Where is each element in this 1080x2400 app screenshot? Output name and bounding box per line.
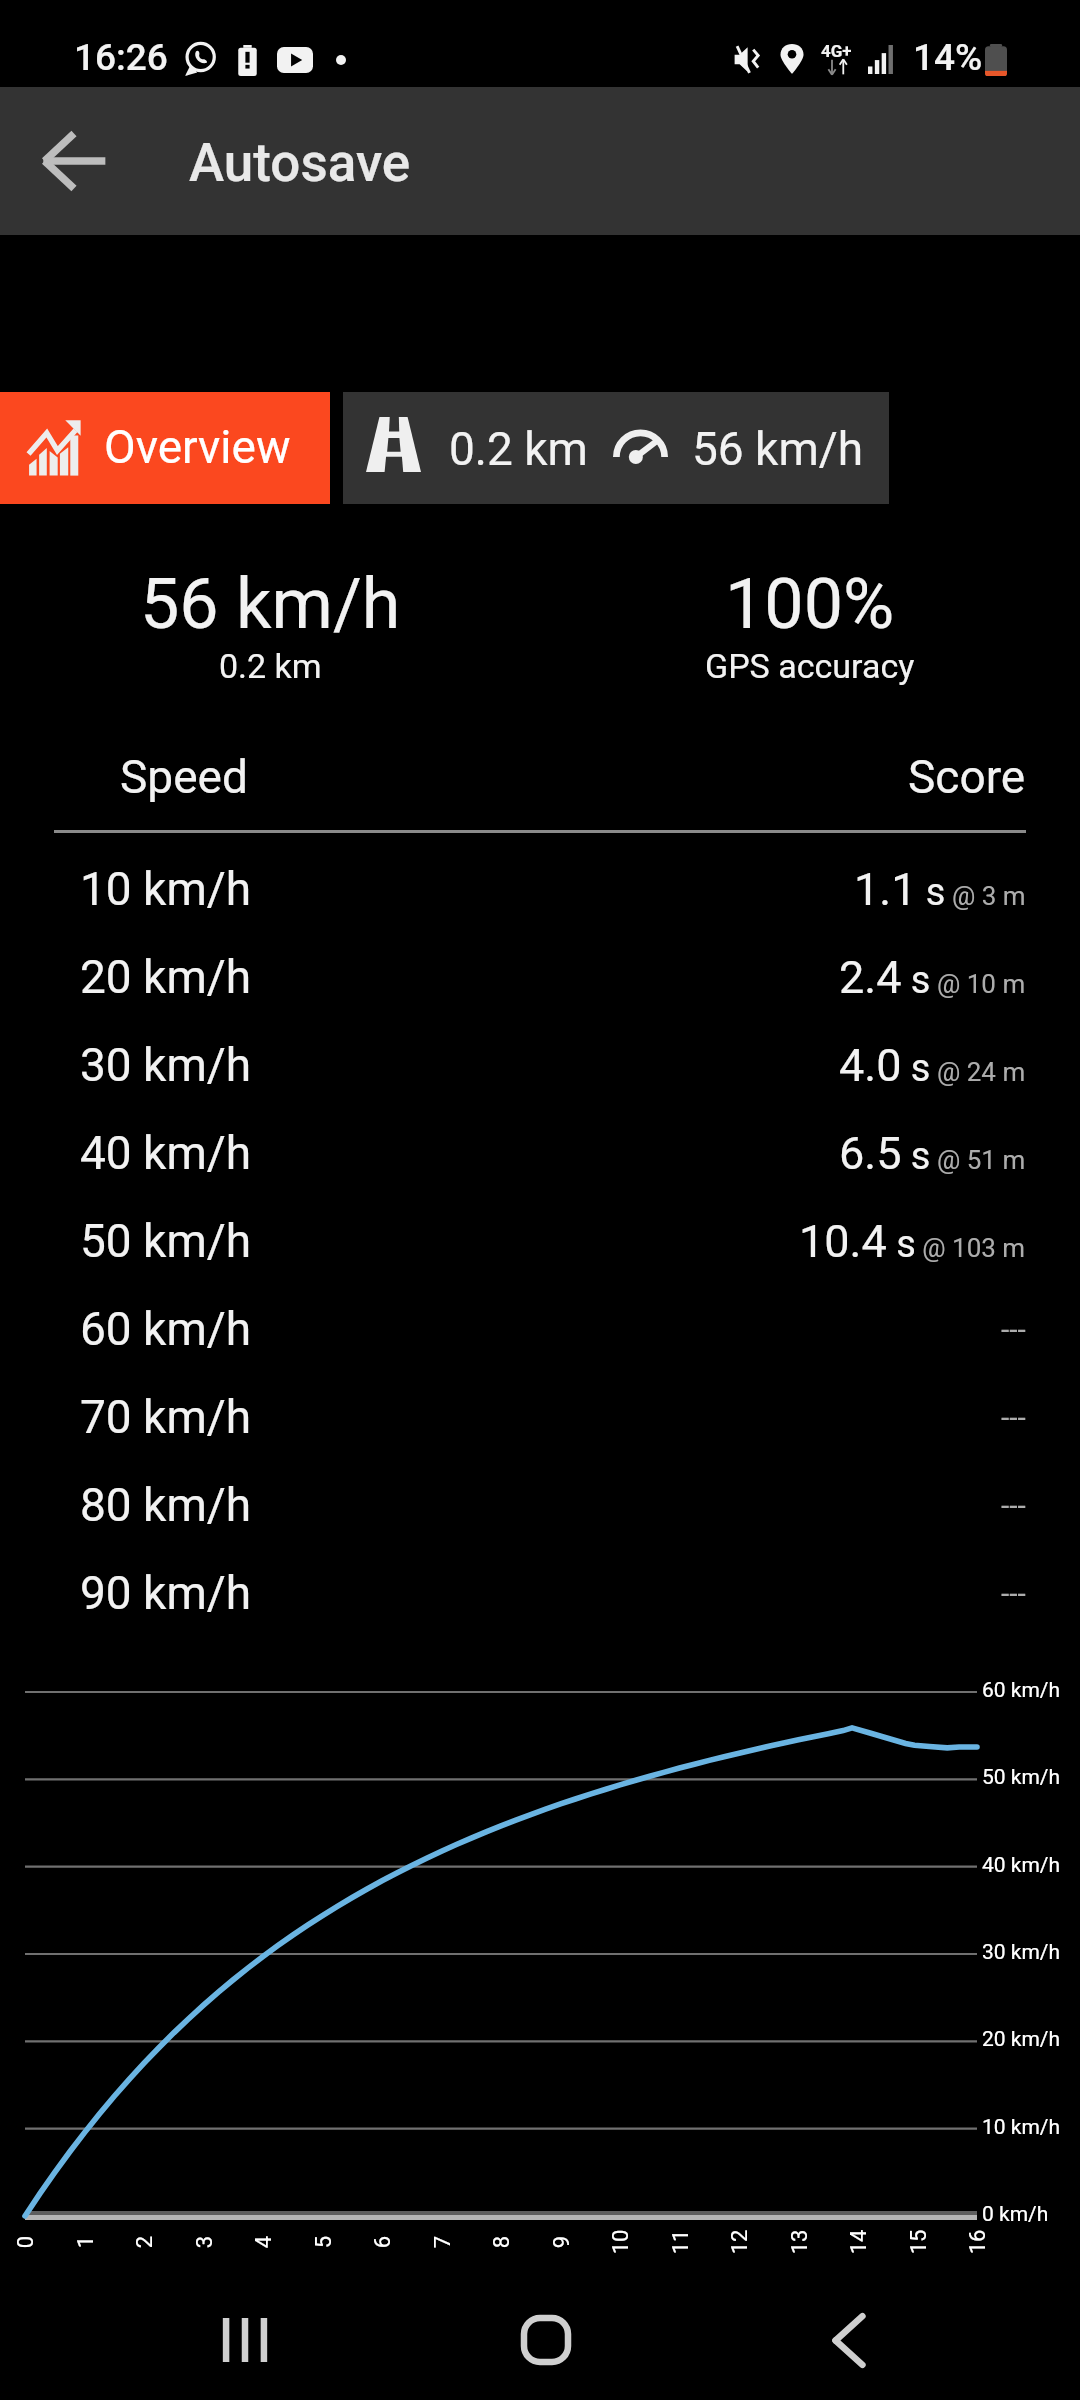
staticText: 90 km/h: [80, 1566, 252, 1620]
button[interactable]: 10 km/h: [0, 845, 1080, 933]
staticText: 0: [12, 2235, 38, 2248]
staticText: Autosave: [189, 132, 411, 194]
button[interactable]: Back: [789, 2280, 909, 2400]
button[interactable]: Home: [486, 2280, 606, 2400]
staticText: 11: [667, 2229, 693, 2254]
staticText: 10: [607, 2229, 633, 2254]
staticText: 4.0 s @ 24 m: [839, 1039, 1026, 1092]
staticText: 60 km/h: [80, 1302, 252, 1356]
staticText: Overview: [104, 420, 291, 474]
button[interactable]: 50 km/h: [0, 1197, 1080, 1285]
staticText: 16:26: [74, 36, 168, 79]
button[interactable]: 70 km/h: [0, 1373, 1080, 1461]
staticText: 16: [964, 2229, 990, 2254]
staticText: 30 km/h: [982, 1940, 1061, 1965]
staticText: 70 km/h: [80, 1390, 252, 1444]
staticText: 50 km/h: [80, 1214, 252, 1268]
staticText: 5: [310, 2235, 336, 2248]
staticText: 2: [131, 2235, 157, 2248]
staticText: 9: [548, 2235, 574, 2248]
button[interactable]: 20 km/h: [0, 933, 1080, 1021]
staticText: Score: [908, 750, 1026, 804]
staticText: ---: [1001, 1576, 1026, 1611]
staticText: 10 km/h: [982, 2115, 1061, 2140]
button[interactable]: 40 km/h: [0, 1109, 1080, 1197]
staticText: 10 km/h: [80, 862, 252, 916]
staticText: 56 km/h: [692, 422, 864, 476]
button[interactable]: 90 km/h: [0, 1549, 1080, 1637]
staticText: 56 km/h: [140, 563, 401, 645]
staticText: 6.5 s @ 51 m: [839, 1127, 1026, 1180]
staticText: 0 km/h: [982, 2202, 1049, 2227]
staticText: 40 km/h: [80, 1126, 252, 1180]
staticText: ---: [1001, 1312, 1026, 1347]
staticText: 0.2 km: [449, 422, 588, 476]
staticText: 2.4 s @ 10 m: [839, 951, 1026, 1004]
staticText: 0.2 km: [219, 646, 322, 686]
staticText: 7: [429, 2235, 455, 2248]
staticText: 8: [488, 2235, 514, 2248]
staticText: 4G+: [821, 41, 852, 61]
staticText: 14%: [913, 36, 983, 79]
button[interactable]: 60 km/h: [0, 1285, 1080, 1373]
staticText: Speed: [120, 750, 248, 804]
staticText: ---: [1001, 1488, 1026, 1523]
staticText: 12: [726, 2229, 752, 2254]
staticText: 30 km/h: [80, 1038, 252, 1092]
staticText: 10.4 s @ 103 m: [799, 1215, 1026, 1268]
staticText: 60 km/h: [982, 1678, 1061, 1703]
button[interactable]: 80 km/h: [0, 1461, 1080, 1549]
staticText: 20 km/h: [80, 950, 252, 1004]
staticText: 4: [250, 2235, 276, 2248]
staticText: 40 km/h: [982, 1853, 1061, 1878]
staticText: 50 km/h: [982, 1765, 1061, 1790]
staticText: 15: [905, 2229, 931, 2254]
staticText: 100%: [725, 563, 895, 645]
staticText: 80 km/h: [80, 1478, 252, 1532]
staticText: 20 km/h: [982, 2027, 1061, 2052]
button[interactable]: Overview: [0, 392, 330, 504]
staticText: 13: [786, 2229, 812, 2254]
staticText: 14: [845, 2229, 871, 2254]
button[interactable]: Recent apps: [185, 2280, 305, 2400]
staticText: ---: [1001, 1400, 1026, 1435]
staticText: 6: [369, 2235, 395, 2248]
staticText: 1.1 s @ 3 m: [854, 863, 1026, 916]
staticText: 1: [72, 2235, 98, 2248]
staticText: GPS accuracy: [705, 646, 915, 686]
staticText: 3: [191, 2235, 217, 2248]
button[interactable]: 0.2 km: [343, 392, 889, 504]
button[interactable]: 30 km/h: [0, 1021, 1080, 1109]
button[interactable]: Back: [0, 87, 148, 235]
